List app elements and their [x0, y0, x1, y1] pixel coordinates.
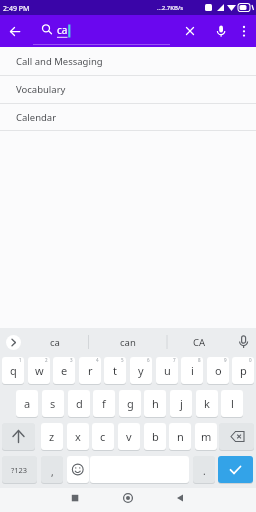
staticText: Call and Messaging [16, 55, 103, 68]
button[interactable]: l [221, 390, 243, 417]
button[interactable] [180, 21, 200, 41]
button[interactable]: h [144, 390, 166, 417]
button[interactable] [67, 456, 89, 483]
staticText: v [126, 429, 132, 444]
staticText: u [164, 363, 171, 378]
staticText: k [204, 396, 210, 411]
staticText: a [24, 396, 31, 411]
button[interactable]: t [104, 357, 126, 384]
button[interactable]: , [41, 456, 63, 483]
button[interactable] [211, 21, 231, 41]
button[interactable] [118, 490, 138, 510]
staticText: CA [193, 336, 206, 349]
button[interactable]: n [169, 423, 191, 450]
button[interactable]: s [42, 390, 64, 417]
button[interactable]: u [156, 357, 178, 384]
staticText: ca [57, 23, 68, 37]
button[interactable]: k [196, 390, 218, 417]
staticText: b [152, 429, 159, 444]
staticText: ...2.7KB/s [157, 4, 184, 12]
staticText: q [10, 363, 17, 378]
button[interactable]: ca [21, 331, 88, 353]
button[interactable]: ?123 [2, 456, 37, 483]
button[interactable]: Calendar [0, 104, 256, 131]
button[interactable] [5, 21, 25, 41]
staticText: r [88, 363, 93, 378]
staticText: g [127, 396, 134, 411]
staticText: 2:49 PM [3, 4, 30, 14]
staticText: o [215, 363, 222, 378]
staticText: 7 [173, 357, 176, 363]
staticText: z [49, 429, 55, 444]
button[interactable]: e [53, 357, 75, 384]
staticText: 3 [70, 357, 73, 363]
staticText: i [191, 363, 194, 378]
button[interactable]: i [181, 357, 203, 384]
staticText: 9 [224, 357, 227, 363]
button[interactable]: v [118, 423, 140, 450]
staticText: f [102, 396, 106, 411]
button[interactable]: Call and Messaging [0, 47, 256, 76]
staticText: h [152, 396, 159, 411]
staticText: m [201, 429, 212, 444]
staticText: e [61, 363, 68, 378]
button[interactable]: c [92, 423, 114, 450]
staticText: can [120, 336, 136, 349]
button[interactable]: Vocabulary [0, 76, 256, 104]
staticText: 4 [96, 357, 99, 363]
staticText: . [203, 464, 206, 478]
button[interactable] [219, 423, 254, 450]
button[interactable] [218, 456, 253, 483]
button[interactable]: can [93, 331, 162, 353]
button[interactable] [234, 21, 254, 41]
staticText: d [76, 396, 83, 411]
staticText: j [180, 396, 183, 411]
staticText: x [75, 429, 81, 444]
button[interactable]: j [170, 390, 192, 417]
staticText: p [240, 363, 247, 378]
button[interactable]: . [193, 456, 215, 483]
button[interactable]: a [16, 390, 38, 417]
staticText: 2 [45, 357, 48, 363]
button[interactable]: y [130, 357, 152, 384]
button[interactable] [170, 490, 190, 510]
staticText: Calendar [16, 111, 57, 124]
staticText: ca [50, 336, 60, 349]
button[interactable]: x [67, 423, 89, 450]
button[interactable]: f [93, 390, 115, 417]
staticText: 8 [198, 357, 201, 363]
button[interactable]: w [28, 357, 50, 384]
button[interactable] [2, 423, 35, 450]
staticText: n [177, 429, 184, 444]
button[interactable]: z [41, 423, 63, 450]
staticText: , [51, 465, 54, 479]
staticText: 1 [19, 357, 22, 363]
button[interactable]: o [207, 357, 229, 384]
button[interactable]: p [232, 357, 254, 384]
button[interactable]: m [195, 423, 217, 450]
button[interactable]: q [2, 357, 24, 384]
button[interactable] [6, 335, 21, 350]
button[interactable]: r [79, 357, 101, 384]
staticText: w [35, 363, 44, 378]
staticText: ?123 [11, 465, 28, 475]
staticText: s [50, 396, 56, 411]
button[interactable]: b [144, 423, 166, 450]
button[interactable] [65, 490, 85, 510]
staticText: 6 [147, 357, 150, 363]
staticText: 0 [249, 357, 252, 363]
staticText: Vocabulary [16, 83, 66, 96]
button[interactable] [234, 333, 253, 352]
staticText: y [138, 363, 144, 378]
staticText: t [113, 363, 117, 378]
staticText: c [100, 429, 106, 444]
button[interactable]: g [119, 390, 141, 417]
button[interactable]: CA [172, 331, 227, 353]
staticText: 5 [121, 357, 124, 363]
staticText: l [231, 396, 234, 411]
button[interactable]: d [68, 390, 90, 417]
